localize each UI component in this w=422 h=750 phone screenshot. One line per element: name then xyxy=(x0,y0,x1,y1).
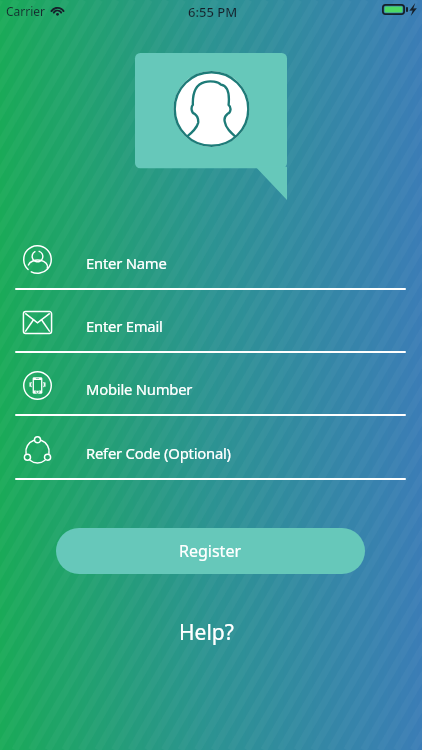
button[interactable]: Refer Code (Optional) xyxy=(0,417,422,481)
staticText: Refer Code (Optional) xyxy=(86,443,231,463)
button[interactable]: Help? xyxy=(163,610,250,655)
staticText: Mobile Number xyxy=(86,379,193,399)
button[interactable]: Mobile Number xyxy=(0,353,422,417)
button[interactable]: Register xyxy=(56,528,365,574)
staticText: Carrier xyxy=(6,3,46,19)
button[interactable]: Enter Name xyxy=(0,227,422,291)
staticText: 6:55 PM xyxy=(188,3,238,21)
staticText: Register xyxy=(179,540,242,562)
staticText: Enter Name xyxy=(86,253,167,273)
button[interactable]: Enter Email xyxy=(0,290,422,354)
staticText: Help? xyxy=(179,618,234,647)
staticText: Enter Email xyxy=(86,316,163,336)
